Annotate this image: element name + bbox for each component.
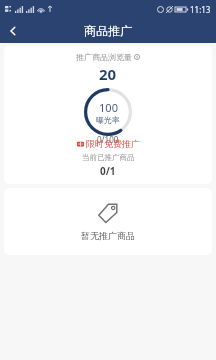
staticText: 限时免费推广 bbox=[86, 138, 140, 149]
button[interactable]: No products bbox=[4, 188, 212, 255]
staticText: 推广商品浏览量 bbox=[76, 52, 132, 62]
staticText: 100 bbox=[99, 100, 118, 115]
other: No products bbox=[97, 202, 119, 224]
staticText: 0/100 bbox=[97, 134, 119, 145]
staticText: 20 bbox=[99, 64, 117, 84]
staticText: 当前已推广商品 bbox=[82, 153, 135, 162]
staticText: 暂无推广商品 bbox=[81, 230, 135, 241]
button[interactable]: Back bbox=[0, 18, 25, 43]
button[interactable]: 推广商品浏览量 bbox=[4, 46, 212, 184]
staticText: 11:13 bbox=[190, 4, 211, 15]
staticText: 0/1 bbox=[100, 164, 116, 178]
staticText: 商品推广 bbox=[84, 23, 132, 38]
staticText: 曝光率 bbox=[96, 115, 120, 125]
